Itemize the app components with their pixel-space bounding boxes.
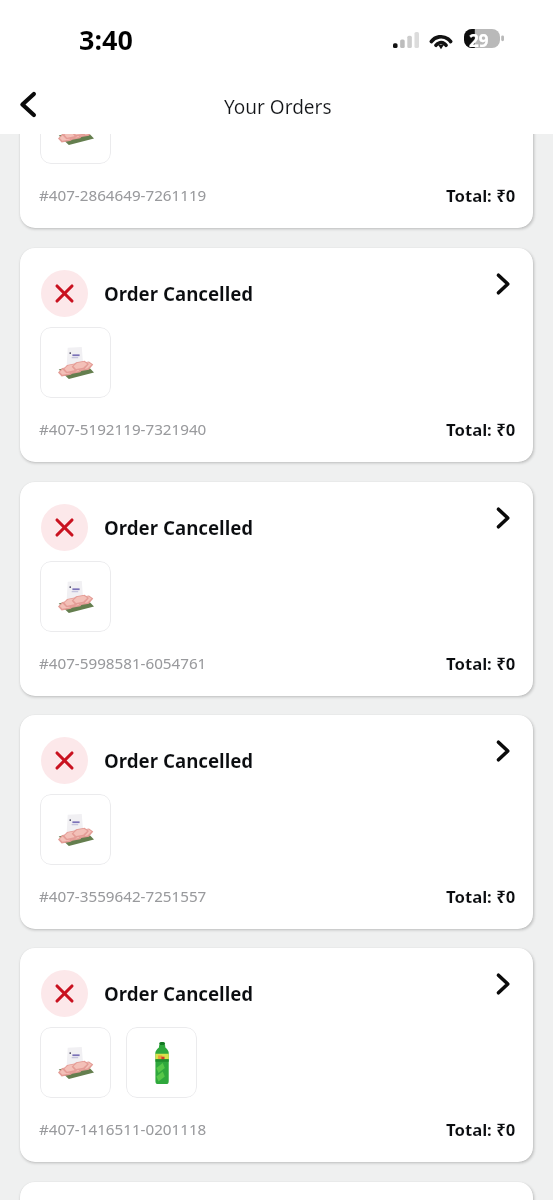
button[interactable]: Chicken breast pack xyxy=(40,561,111,632)
button[interactable]: Chicken breast pack xyxy=(40,794,111,865)
staticText: Total: ₹0 xyxy=(446,184,516,207)
button[interactable]: Order Cancelled xyxy=(20,14,533,228)
staticText: Total: ₹0 xyxy=(446,418,516,441)
staticText: Order Cancelled xyxy=(104,981,254,1006)
button[interactable]: Open order details xyxy=(481,262,525,306)
button[interactable]: Chicken breast pack xyxy=(40,93,111,164)
staticText: 29 xyxy=(469,29,489,48)
button[interactable]: Open order details xyxy=(481,496,525,540)
staticText: #407-2864649-7261119 xyxy=(39,185,207,206)
staticText: Order Cancelled xyxy=(104,281,254,306)
button[interactable]: Order Cancelled xyxy=(20,482,533,696)
button[interactable]: Open order details xyxy=(481,729,525,773)
staticText: 3:40 xyxy=(79,21,133,58)
button[interactable]: Order Cancelled xyxy=(20,948,533,1162)
button[interactable]: Back xyxy=(4,80,52,128)
staticText: Your Orders xyxy=(224,94,332,120)
staticText: Total: ₹0 xyxy=(446,652,516,675)
button[interactable]: Order Cancelled xyxy=(20,715,533,929)
button[interactable]: Chicken breast pack xyxy=(40,1027,111,1098)
staticText: Total: ₹0 xyxy=(446,1118,516,1141)
button[interactable]: Chicken breast pack xyxy=(40,327,111,398)
staticText: #407-5998581-6054761 xyxy=(39,653,207,674)
staticText: Order Cancelled xyxy=(104,515,254,540)
staticText: #407-3559642-7251557 xyxy=(39,886,207,907)
button[interactable]: Open order details xyxy=(481,962,525,1006)
staticText: #407-5192119-7321940 xyxy=(39,419,207,440)
staticText: #407-1416511-0201118 xyxy=(39,1119,207,1140)
staticText: Order Cancelled xyxy=(104,748,254,773)
staticText: Order Cancelled xyxy=(104,47,254,72)
staticText: Total: ₹0 xyxy=(446,885,516,908)
button[interactable]: Open order details xyxy=(481,28,525,72)
button[interactable]: Soft drink bottle xyxy=(126,1027,197,1098)
button[interactable]: Order Cancelled xyxy=(20,248,533,462)
